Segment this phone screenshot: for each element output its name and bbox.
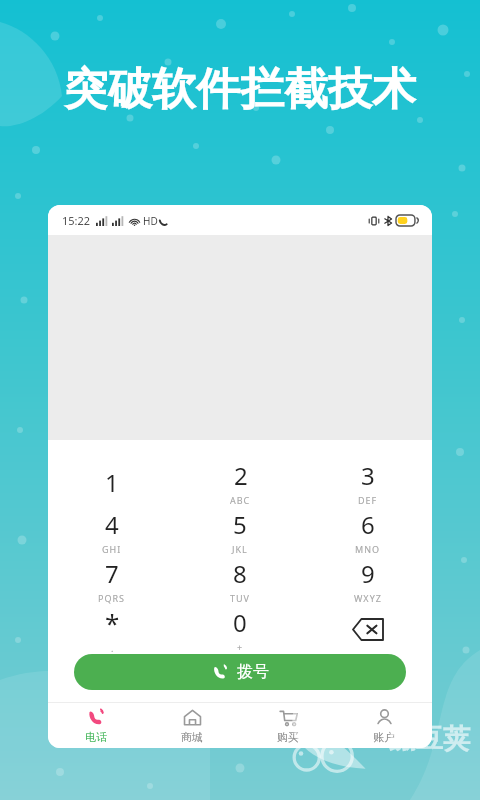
staticText: 购买	[277, 730, 299, 744]
staticText: 蹦豆荚	[389, 722, 470, 756]
staticText: PQRS	[98, 592, 126, 604]
button[interactable]: 商城	[144, 703, 240, 748]
staticText: 1	[105, 466, 119, 499]
staticText: 电话	[85, 730, 107, 744]
button[interactable]: 电话	[48, 703, 144, 748]
button[interactable]: 账户	[336, 703, 432, 748]
button[interactable]: 3	[304, 458, 432, 507]
button[interactable]: 购买	[240, 703, 336, 748]
staticText: TUV	[230, 592, 250, 604]
button[interactable]: 2	[176, 458, 304, 507]
staticText: 账户	[373, 730, 395, 744]
button[interactable]: 0	[176, 605, 304, 654]
staticText: 2	[234, 459, 248, 492]
button[interactable]: 4	[48, 507, 176, 556]
staticText: 拨号	[237, 662, 269, 682]
staticText: 9	[361, 557, 375, 590]
staticText: 突破软件拦截技术	[64, 62, 416, 117]
button[interactable]: 6	[304, 507, 432, 556]
button[interactable]: 5	[176, 507, 304, 556]
staticText: MNO	[355, 543, 381, 555]
staticText: GHI	[102, 543, 122, 555]
staticText: .	[111, 642, 115, 654]
staticText: 0	[233, 606, 247, 639]
button[interactable]: 1	[48, 458, 176, 507]
staticText: 6	[361, 508, 375, 541]
staticText: 7	[105, 557, 119, 590]
staticText: *	[105, 605, 120, 640]
staticText: ABC	[230, 494, 251, 506]
button[interactable]: *	[48, 605, 176, 654]
button[interactable]: 7	[48, 556, 176, 605]
staticText: 8	[233, 557, 247, 590]
staticText: +	[237, 641, 244, 653]
staticText: 4	[105, 508, 119, 541]
button[interactable]: 9	[304, 556, 432, 605]
staticText: 5	[233, 508, 247, 541]
staticText: 3	[361, 459, 375, 492]
staticText: DEF	[358, 494, 378, 506]
staticText: WXYZ	[354, 592, 382, 604]
button[interactable]: 8	[176, 556, 304, 605]
staticText: 15:22	[62, 213, 91, 228]
button[interactable]: 拨号	[74, 654, 406, 690]
staticText: 商城	[181, 730, 203, 744]
staticText: HD	[143, 214, 158, 228]
button[interactable]: Backspace	[304, 605, 432, 654]
staticText: JKL	[232, 543, 248, 555]
